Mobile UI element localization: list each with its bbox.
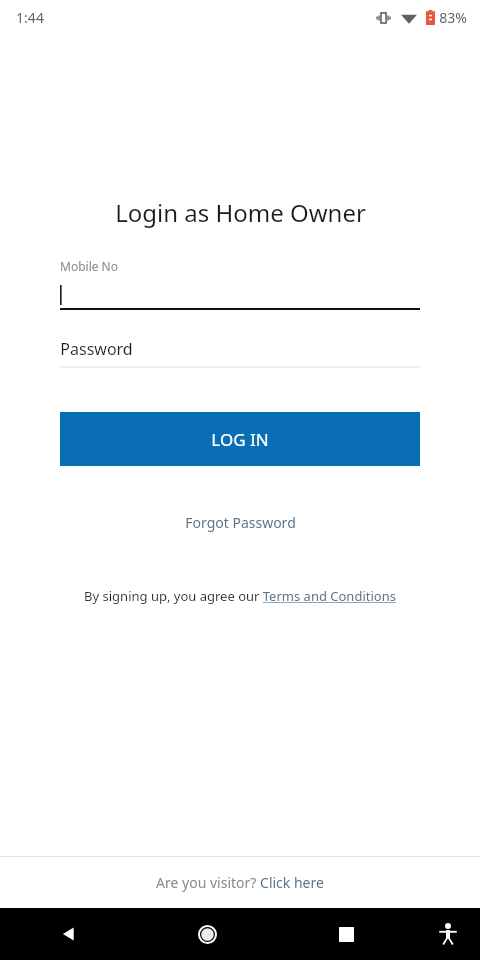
button[interactable]: Are you visitor? Click here [148, 867, 332, 898]
staticText: 1:44 [16, 8, 44, 27]
staticText: Login as Home Owner [115, 196, 366, 229]
button[interactable]: By signing up, you agree our Terms and C… [78, 584, 402, 608]
staticText: Are you visitor? Click here [156, 873, 324, 892]
staticText: LOG IN [211, 428, 269, 451]
staticText: Mobile No [60, 258, 118, 274]
button[interactable]: Mobile No [60, 258, 420, 310]
staticText: 83% [439, 8, 467, 27]
button[interactable]: Accessibility [416, 908, 480, 960]
button[interactable]: Back [0, 908, 138, 960]
button[interactable]: Password [60, 338, 420, 368]
button[interactable]: Forgot Password [177, 509, 304, 536]
button[interactable]: Recent apps [277, 908, 416, 960]
staticText: By signing up, you agree our Terms and C… [84, 587, 396, 605]
button[interactable]: LOG IN [60, 412, 420, 466]
staticText: Forgot Password [185, 513, 296, 532]
button[interactable]: Home [138, 908, 277, 960]
staticText: Password [60, 338, 133, 360]
